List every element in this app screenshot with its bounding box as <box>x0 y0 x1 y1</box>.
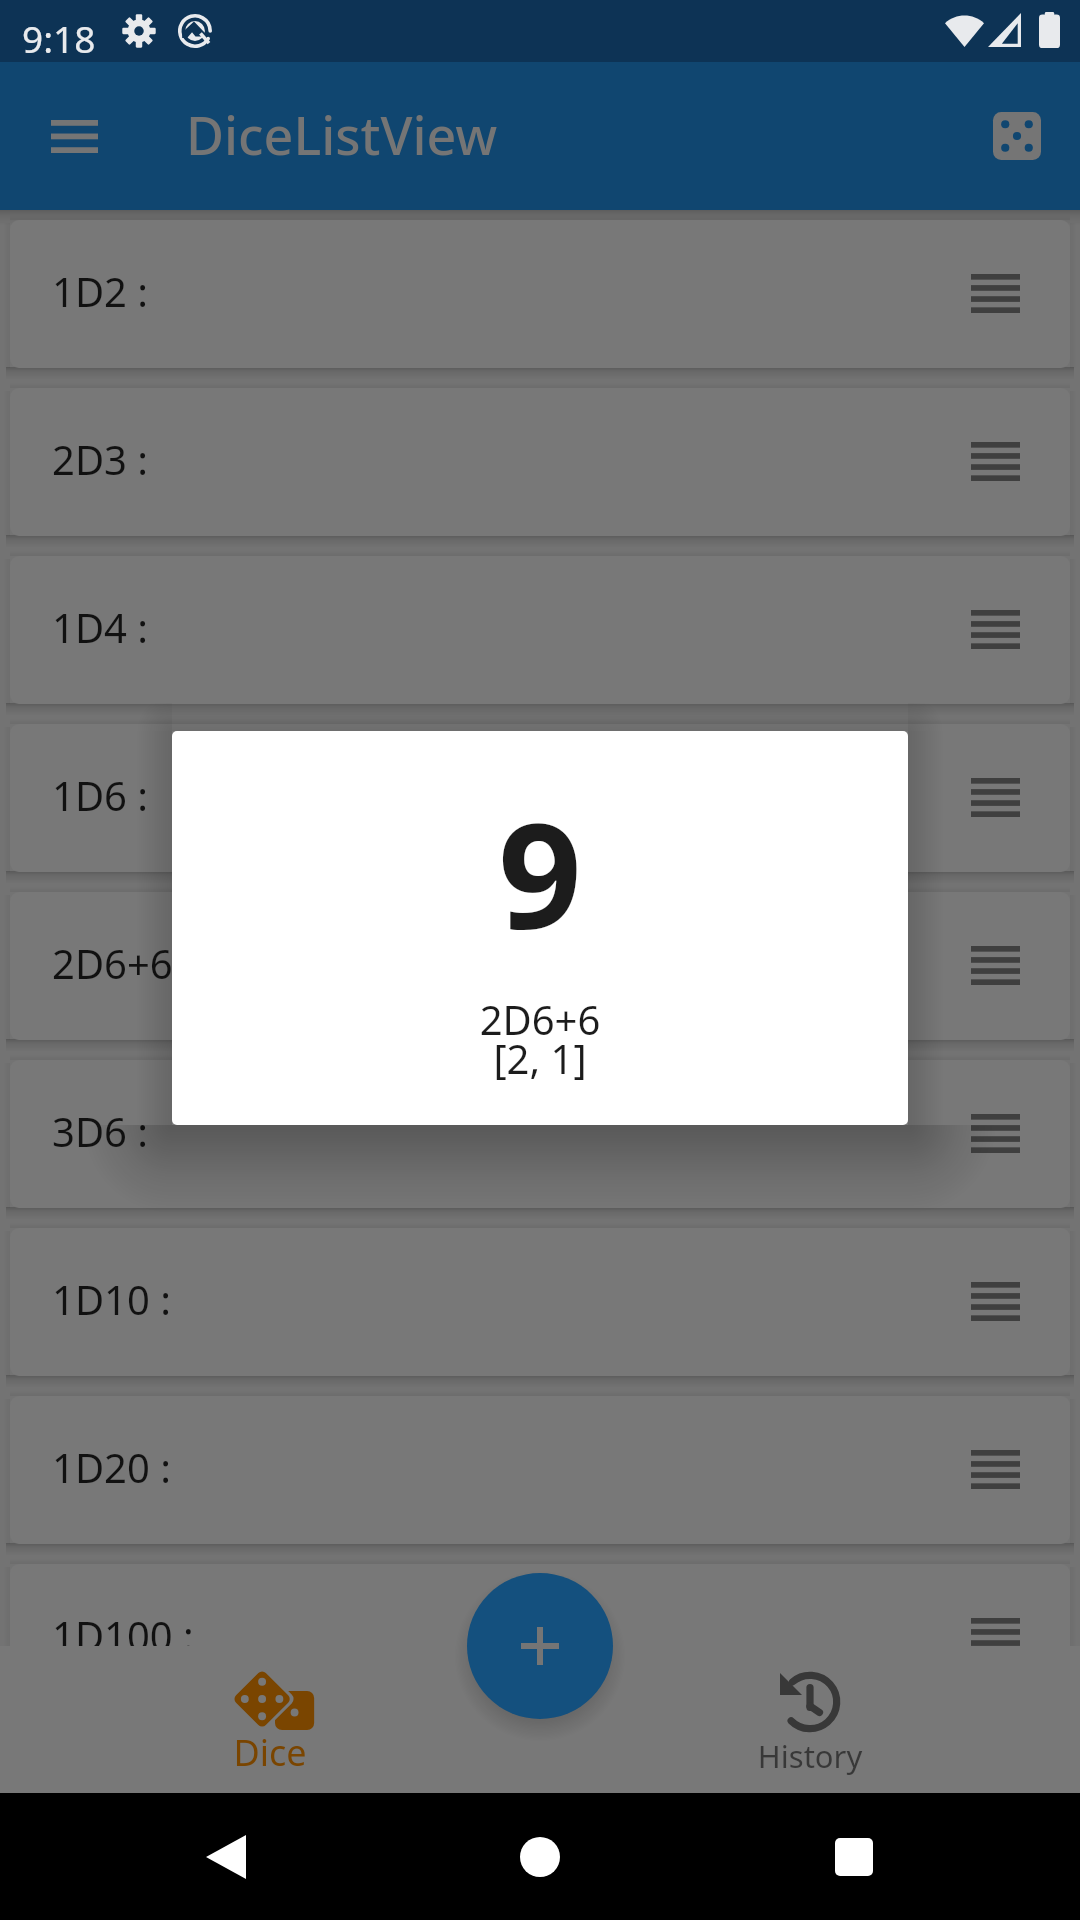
button[interactable]: History <box>630 1646 990 1793</box>
staticText: 2D6+6 [2, 1] <box>172 992 908 1086</box>
button[interactable]: 1D4 : <box>10 556 1070 704</box>
button[interactable]: 1D20 : <box>10 1396 1070 1544</box>
button[interactable]: 1D10 : <box>10 1228 1070 1376</box>
staticText: Dice <box>90 1728 450 1777</box>
staticText: DiceListView <box>186 99 498 170</box>
staticText: 1D6 : <box>52 768 149 822</box>
button[interactable]: 1D6 : <box>10 724 1070 872</box>
button[interactable]: Home <box>494 1811 586 1903</box>
staticText: History <box>630 1735 990 1777</box>
button[interactable]: Recent apps <box>808 1811 900 1903</box>
button[interactable]: Add dice <box>467 1573 613 1719</box>
staticText: 2D3 : <box>52 432 149 486</box>
button[interactable]: 1D2 : <box>10 220 1070 368</box>
button[interactable]: Roll all dice <box>969 88 1065 184</box>
staticText: 1D10 : <box>52 1272 171 1326</box>
button[interactable]: Dice <box>90 1646 450 1793</box>
staticText: 1D4 : <box>52 600 149 654</box>
button[interactable]: 2D6+6 <box>10 892 1070 1040</box>
button[interactable]: Back <box>180 1811 272 1903</box>
staticText: 1D2 : <box>52 264 149 318</box>
button[interactable]: 2D3 : <box>10 388 1070 536</box>
button[interactable]: Open navigation menu <box>26 88 122 184</box>
staticText: 9:18 <box>22 13 96 63</box>
button[interactable]: 1D100 : <box>10 1564 1070 1712</box>
staticText: 3D6 : <box>52 1104 149 1158</box>
staticText: 9 <box>498 773 582 972</box>
staticText: 1D20 : <box>52 1440 171 1494</box>
staticText: 1D100 : <box>52 1608 194 1662</box>
staticText: 2D6+6 <box>52 936 173 990</box>
button[interactable]: 3D6 : <box>10 1060 1070 1208</box>
